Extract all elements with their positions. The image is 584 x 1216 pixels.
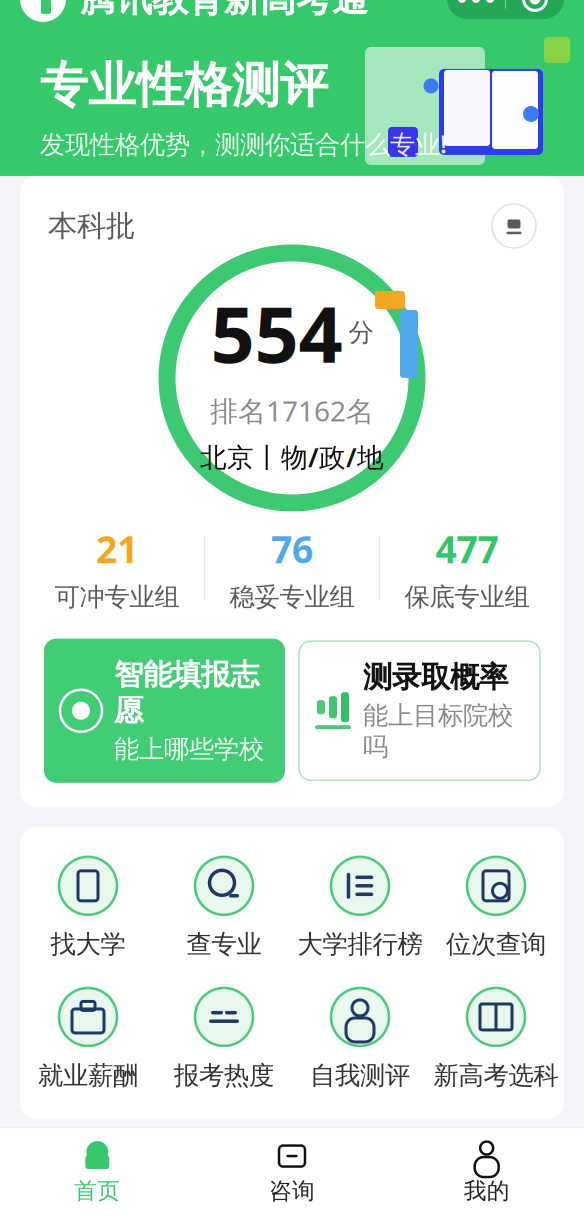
staticText: 新高考选科 — [433, 1060, 558, 1091]
staticText: 咨询 — [269, 1177, 315, 1205]
staticText: 专业性格测评 — [40, 56, 328, 115]
button[interactable]: 位次查询 — [428, 855, 564, 960]
button[interactable]: 76 — [205, 524, 379, 613]
staticText: 北京丨物/政/地 — [200, 439, 384, 475]
staticText: 554 — [210, 281, 342, 384]
staticText: 自我测评 — [310, 1060, 410, 1091]
staticText: 测录取概率 — [363, 659, 508, 695]
button[interactable]: 报考热度 — [156, 986, 292, 1091]
staticText: 76 — [271, 524, 313, 573]
staticText: 能上目标院校吗 — [363, 700, 513, 762]
staticText: 21 — [96, 524, 138, 573]
staticText: 首页 — [74, 1177, 120, 1205]
staticText: 发现性格优势，测测你适合什么专业! — [40, 127, 447, 160]
staticText: 本科批 — [48, 208, 135, 244]
staticText: 能上哪些学校 — [114, 734, 264, 765]
button[interactable]: 自我测评 — [292, 986, 428, 1091]
button[interactable]: 新高考选科 — [428, 986, 564, 1091]
staticText: 位次查询 — [446, 929, 546, 960]
button[interactable]: 智能填报志愿 — [44, 639, 285, 783]
staticText: 腾讯教育新高考通 — [80, 0, 368, 21]
button[interactable]: 大学排行榜 — [292, 855, 428, 960]
staticText: 查专业 — [186, 929, 261, 960]
staticText: 分 — [348, 317, 373, 348]
button[interactable]: 咨询 — [195, 1134, 389, 1213]
staticText: 排名17162名 — [210, 392, 374, 429]
staticText: 找大学 — [50, 929, 125, 960]
staticText: 大学排行榜 — [297, 929, 422, 960]
staticText: 稳妥专业组 — [229, 581, 354, 613]
staticText: 我的 — [464, 1177, 510, 1205]
staticText: 智能填报志愿 — [114, 657, 259, 729]
button[interactable]: 21 — [30, 524, 204, 613]
button[interactable]: Close mini program — [506, 0, 564, 19]
staticText: 报考热度 — [174, 1060, 274, 1091]
button[interactable]: 查专业 — [156, 855, 292, 960]
button[interactable]: 477 — [380, 524, 554, 613]
button[interactable]: 就业薪酬 — [20, 986, 156, 1091]
button[interactable]: More options — [447, 0, 505, 19]
button[interactable]: 找大学 — [20, 855, 156, 960]
button[interactable]: Edit score — [492, 204, 536, 248]
staticText: 保底专业组 — [404, 581, 529, 613]
button[interactable]: 测录取概率 — [299, 641, 540, 780]
staticText: 477 — [435, 524, 498, 573]
staticText: 就业薪酬 — [38, 1060, 138, 1091]
button[interactable]: 我的 — [389, 1134, 584, 1213]
staticText: 可冲专业组 — [54, 581, 179, 613]
button[interactable]: 首页 — [0, 1134, 195, 1213]
